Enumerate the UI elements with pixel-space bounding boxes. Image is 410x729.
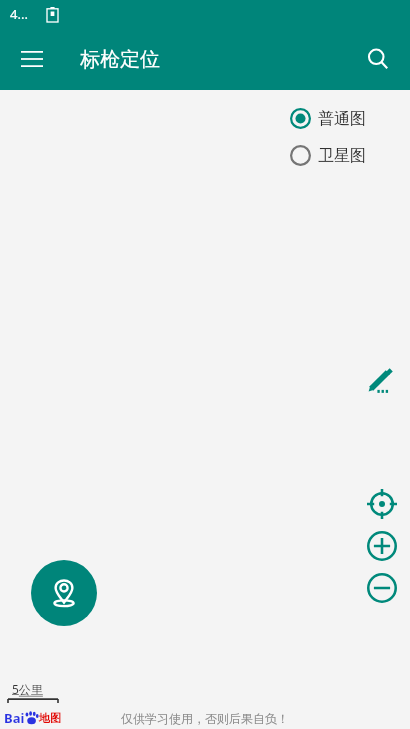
- button[interactable]: Locate marker: [31, 560, 97, 626]
- staticText: 4...: [10, 5, 28, 23]
- staticText: 卫星图: [318, 146, 366, 166]
- staticText: 标枪定位: [80, 47, 160, 72]
- staticText: 仅供学习使用，否则后果自负！: [121, 711, 289, 726]
- staticText: 普通图: [318, 109, 366, 129]
- button[interactable]: Open navigation menu: [8, 35, 56, 83]
- staticText: 地图: [39, 711, 61, 725]
- button[interactable]: 卫星图: [288, 143, 368, 168]
- button[interactable]: Zoom in: [365, 529, 399, 563]
- staticText: Bai: [4, 709, 25, 727]
- staticText: 5公里: [12, 681, 43, 697]
- button[interactable]: Draw: [362, 362, 398, 398]
- button[interactable]: My location: [365, 487, 399, 521]
- button[interactable]: 普通图: [288, 106, 368, 131]
- button[interactable]: Zoom out: [365, 571, 399, 605]
- button[interactable]: Search: [354, 35, 402, 83]
